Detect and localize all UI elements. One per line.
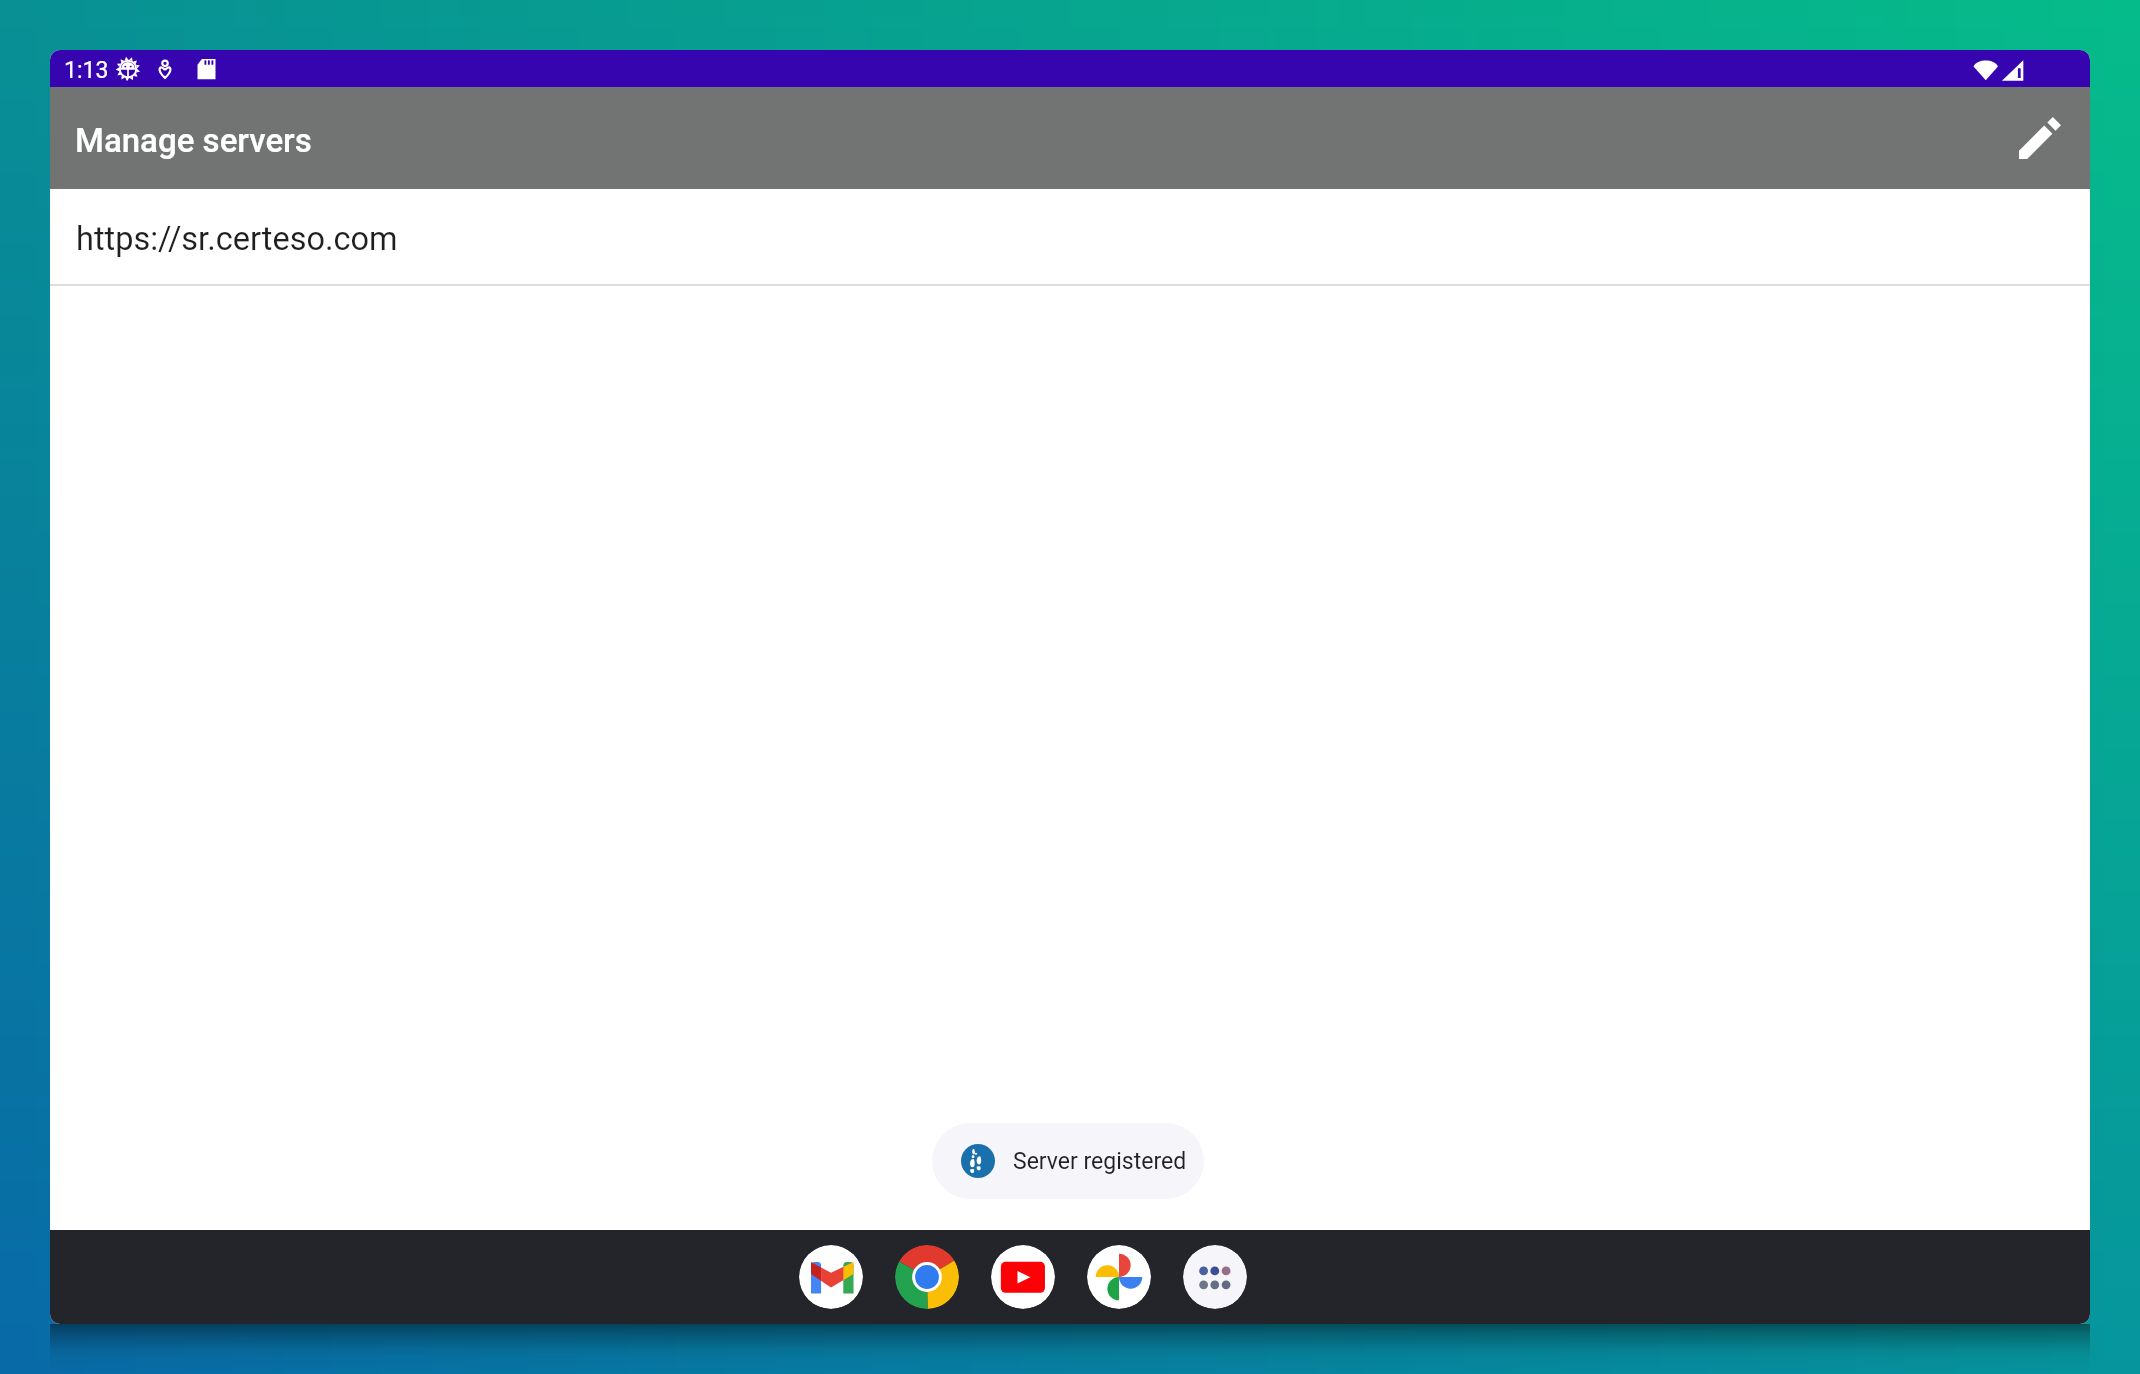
button[interactable]: Chrome <box>895 1245 959 1309</box>
button[interactable]: Gmail <box>799 1245 863 1309</box>
button[interactable]: All apps <box>1183 1245 1247 1309</box>
button[interactable]: Server registered <box>932 1123 1204 1199</box>
staticText: Server registered <box>1013 1148 1187 1175</box>
staticText: Manage servers <box>75 121 312 160</box>
staticText: 1:13 <box>64 57 109 84</box>
button[interactable]: https://sr.certeso.com <box>50 189 2090 284</box>
button[interactable]: Edit <box>2000 98 2080 178</box>
button[interactable]: Photos <box>1087 1245 1151 1309</box>
staticText: https://sr.certeso.com <box>76 220 398 258</box>
button[interactable]: YouTube <box>991 1245 1055 1309</box>
